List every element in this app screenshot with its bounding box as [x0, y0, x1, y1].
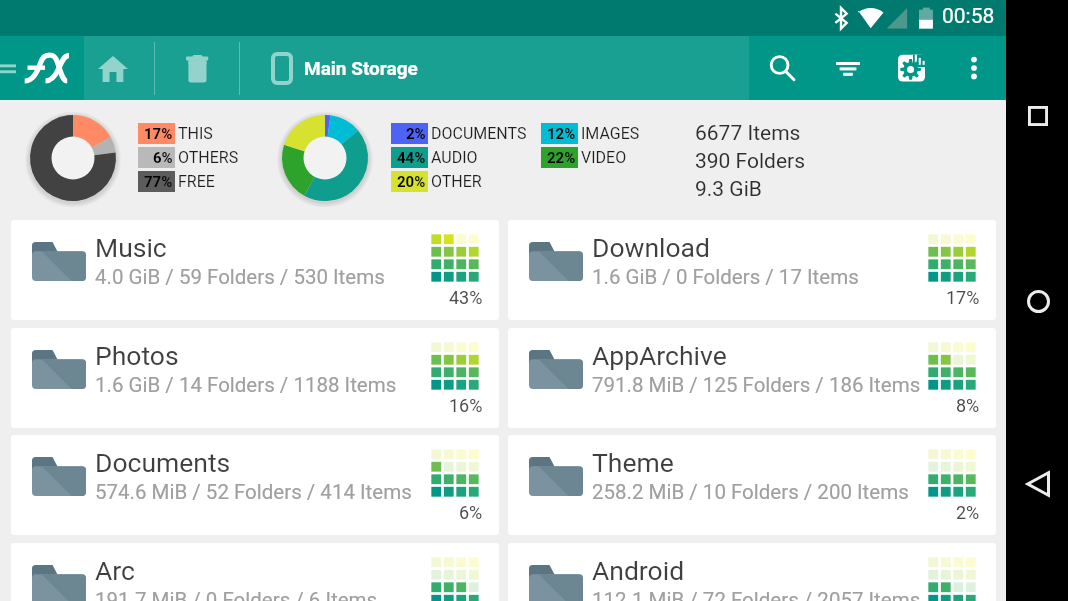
staticText: 44% [397, 149, 426, 167]
staticText: 2% [956, 502, 980, 523]
staticText: 12% [547, 125, 576, 143]
button[interactable]: Filter [818, 36, 878, 100]
staticText: Music [95, 232, 167, 263]
staticText: 77% [144, 173, 173, 191]
button[interactable]: Settings [882, 36, 942, 100]
staticText: Photos [95, 340, 179, 371]
button[interactable]: Android [508, 543, 996, 601]
button[interactable]: Back [1018, 464, 1058, 504]
button[interactable]: Theme [508, 435, 996, 535]
button[interactable]: More options [944, 36, 1004, 100]
staticText: 00:58 [942, 4, 995, 29]
staticText: 6% [153, 149, 173, 167]
staticText: 6% [459, 502, 483, 523]
button[interactable]: Music [11, 220, 499, 320]
staticText: 390 Folders [695, 149, 806, 174]
staticText: FREE [178, 172, 215, 191]
button[interactable]: Photos [11, 328, 499, 428]
staticText: Theme [592, 447, 674, 478]
button[interactable]: Recent apps [1018, 96, 1058, 136]
staticText: OTHERS [178, 148, 239, 167]
staticText: 791.8 MiB / 125 Folders / 186 Items [592, 373, 921, 397]
button[interactable]: Main Storage [240, 36, 749, 100]
staticText: 2% [406, 125, 426, 143]
staticText: 22% [547, 149, 576, 167]
staticText: THIS [178, 124, 213, 143]
staticText: Download [592, 232, 710, 263]
button[interactable]: AppArchive [508, 328, 996, 428]
button[interactable]: FX menu [0, 36, 84, 100]
staticText: Android [592, 555, 685, 586]
staticText: AUDIO [431, 148, 478, 167]
staticText: 8% [956, 395, 980, 416]
button[interactable]: Download [508, 220, 996, 320]
staticText: 17% [144, 125, 173, 143]
button[interactable]: Trash [155, 36, 239, 100]
staticText: 4.0 GiB / 59 Folders / 530 Items [95, 265, 385, 289]
staticText: 17% [946, 287, 980, 308]
staticText: IMAGES [581, 124, 640, 143]
staticText: 9.3 GiB [695, 177, 762, 202]
staticText: 191.7 MiB / 0 Folders / 6 Items [95, 588, 378, 601]
staticText: 258.2 MiB / 10 Folders / 200 Items [592, 480, 909, 504]
staticText: 1.6 GiB / 14 Folders / 1188 Items [95, 373, 397, 397]
staticText: OTHER [431, 172, 482, 191]
button[interactable]: Documents [11, 435, 499, 535]
staticText: Main Storage [304, 57, 418, 79]
staticText: 6677 Items [695, 121, 801, 146]
staticText: DOCUMENTS [431, 124, 527, 143]
staticText: 16% [449, 395, 483, 416]
staticText: 20% [397, 173, 426, 191]
staticText: AppArchive [592, 340, 727, 371]
button[interactable]: Search [752, 36, 812, 100]
staticText: 112.1 MiB / 72 Folders / 2057 Items [592, 588, 921, 601]
staticText: VIDEO [581, 148, 627, 167]
button[interactable]: Home [1018, 281, 1058, 321]
button[interactable]: Home [84, 36, 141, 100]
staticText: Arc [95, 555, 135, 586]
staticText: 1.6 GiB / 0 Folders / 17 Items [592, 265, 859, 289]
staticText: 574.6 MiB / 52 Folders / 414 Items [95, 480, 412, 504]
button[interactable]: Arc [11, 543, 499, 601]
staticText: 43% [449, 287, 483, 308]
staticText: Documents [95, 447, 231, 478]
